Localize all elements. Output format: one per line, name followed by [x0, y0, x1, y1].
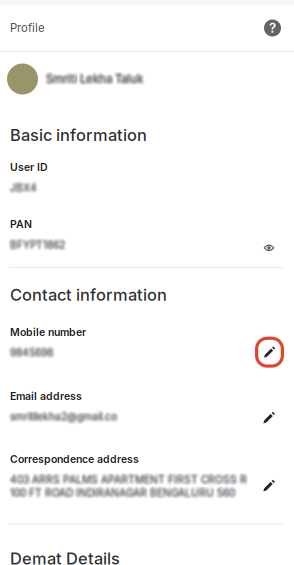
- staticText: Mobile number: [10, 326, 86, 338]
- staticText: Smriti Lekha Taluk: [45, 72, 142, 86]
- staticText: 100 FT ROAD INDIRANAGAR BENGALURU 560: [10, 487, 235, 499]
- staticText: 403 ARRS PALMS APARTMENT FIRST CROSS R: [9, 472, 246, 485]
- staticText: 100 FT ROAD INDIRANAGAR BENGALURU 560: [12, 489, 237, 501]
- staticText: 403 ARRS PALMS APARTMENT FIRST CROSS R: [9, 475, 246, 488]
- staticText: 403 ARRS PALMS APARTMENT FIRST CROSS R: [8, 473, 245, 486]
- staticText: JBX4: [11, 184, 38, 196]
- staticText: JBX4: [9, 180, 36, 192]
- staticText: BFYPT1862: [8, 237, 63, 249]
- staticText: BFYPT1862: [11, 241, 66, 253]
- staticText: 100 FT ROAD INDIRANAGAR BENGALURU 560: [12, 488, 237, 500]
- staticText: 100 FT ROAD INDIRANAGAR BENGALURU 560: [11, 487, 236, 499]
- staticText: 403 ARRS PALMS APARTMENT FIRST CROSS R: [10, 473, 247, 486]
- staticText: Contact information: [10, 285, 167, 305]
- staticText: 403 ARRS PALMS APARTMENT FIRST CROSS R: [12, 472, 249, 485]
- staticText: smritilekha2@gmail.co: [12, 411, 119, 424]
- staticText: smritilekha2@gmail.co: [12, 412, 119, 425]
- staticText: JBX4: [12, 182, 39, 194]
- staticText: 403 ARRS PALMS APARTMENT FIRST CROSS R: [8, 474, 245, 487]
- staticText: 403 ARRS PALMS APARTMENT FIRST CROSS R: [10, 474, 247, 487]
- staticText: BFYPT1862: [10, 238, 65, 250]
- staticText: JBX4: [12, 184, 39, 196]
- staticText: Smriti Lekha Taluk: [45, 74, 142, 88]
- staticText: Profile: [10, 21, 45, 35]
- staticText: 9845698: [8, 346, 51, 359]
- staticText: User ID: [10, 161, 48, 173]
- button[interactable]: Help: [264, 19, 281, 36]
- staticText: smritilekha2@gmail.co: [11, 410, 118, 423]
- staticText: smritilekha2@gmail.co: [12, 408, 119, 421]
- staticText: smritilekha2@gmail.co: [8, 408, 115, 421]
- staticText: JBX4: [10, 181, 37, 193]
- staticText: smritilekha2@gmail.co: [12, 410, 119, 423]
- staticText: Smriti Lekha Taluk: [47, 74, 144, 88]
- staticText: BFYPT1862: [11, 240, 66, 252]
- staticText: 403 ARRS PALMS APARTMENT FIRST CROSS R: [12, 473, 249, 486]
- staticText: Smriti Lekha Taluk: [48, 70, 145, 84]
- button[interactable]: Show PAN: [257, 240, 284, 256]
- staticText: 9845698: [9, 345, 52, 358]
- staticText: BFYPT1862: [9, 237, 64, 249]
- staticText: 9845698: [9, 347, 52, 360]
- staticText: Smriti Lekha Taluk: [46, 71, 143, 85]
- staticText: smritilekha2@gmail.co: [9, 411, 116, 424]
- staticText: 100 FT ROAD INDIRANAGAR BENGALURU 560: [12, 487, 237, 499]
- staticText: 9845698: [8, 345, 51, 358]
- staticText: Smriti Lekha Taluk: [45, 70, 142, 84]
- staticText: 403 ARRS PALMS APARTMENT FIRST CROSS R: [11, 474, 248, 487]
- staticText: smritilekha2@gmail.co: [8, 409, 115, 422]
- staticText: JBX4: [10, 183, 37, 195]
- staticText: 100 FT ROAD INDIRANAGAR BENGALURU 560: [8, 486, 233, 498]
- staticText: smritilekha2@gmail.co: [11, 411, 118, 424]
- staticText: JBX4: [9, 182, 36, 194]
- staticText: 9845698: [8, 347, 51, 360]
- staticText: PAN: [10, 218, 32, 230]
- staticText: 100 FT ROAD INDIRANAGAR BENGALURU 560: [9, 489, 234, 501]
- staticText: 9845698: [12, 345, 55, 358]
- staticText: Smriti Lekha Taluk: [46, 70, 143, 84]
- staticText: JBX4: [8, 183, 35, 195]
- staticText: BFYPT1862: [9, 239, 64, 251]
- staticText: BFYPT1862: [12, 240, 67, 252]
- staticText: JBX4: [8, 180, 35, 192]
- button[interactable]: Edit Correspondence address: [257, 478, 284, 494]
- staticText: 403 ARRS PALMS APARTMENT FIRST CROSS R: [9, 473, 246, 486]
- staticText: 9845698: [8, 348, 51, 361]
- staticText: 9845698: [10, 348, 53, 361]
- staticText: 403 ARRS PALMS APARTMENT FIRST CROSS R: [8, 471, 245, 484]
- staticText: JBX4: [12, 181, 39, 193]
- staticText: 100 FT ROAD INDIRANAGAR BENGALURU 560: [10, 485, 235, 497]
- staticText: BFYPT1862: [9, 241, 64, 253]
- staticText: smritilekha2@gmail.co: [10, 411, 117, 424]
- staticText: 100 FT ROAD INDIRANAGAR BENGALURU 560: [12, 486, 237, 498]
- staticText: 100 FT ROAD INDIRANAGAR BENGALURU 560: [10, 489, 235, 501]
- staticText: smritilekha2@gmail.co: [9, 412, 116, 425]
- staticText: 9845698: [11, 346, 54, 359]
- staticText: JBX4: [11, 183, 38, 195]
- staticText: JBX4: [11, 181, 38, 193]
- staticText: smritilekha2@gmail.co: [9, 410, 116, 423]
- staticText: 9845698: [10, 347, 53, 360]
- staticText: JBX4: [8, 182, 35, 194]
- staticText: Smriti Lekha Taluk: [47, 70, 144, 84]
- staticText: BFYPT1862: [8, 240, 63, 252]
- staticText: Smriti Lekha Taluk: [46, 73, 143, 87]
- button[interactable]: Edit Mobile number: [255, 337, 284, 368]
- staticText: Smriti Lekha Taluk: [45, 73, 142, 87]
- staticText: smritilekha2@gmail.co: [10, 410, 117, 423]
- button[interactable]: Edit Email address: [257, 410, 284, 426]
- staticText: smritilekha2@gmail.co: [11, 412, 118, 425]
- staticText: JBX4: [9, 184, 36, 196]
- staticText: Smriti Lekha Taluk: [44, 74, 141, 88]
- staticText: JBX4: [8, 181, 35, 193]
- staticText: 100 FT ROAD INDIRANAGAR BENGALURU 560: [8, 489, 233, 501]
- staticText: 403 ARRS PALMS APARTMENT FIRST CROSS R: [12, 471, 249, 484]
- staticText: 100 FT ROAD INDIRANAGAR BENGALURU 560: [11, 485, 236, 497]
- staticText: BFYPT1862: [10, 237, 65, 249]
- staticText: BFYPT1862: [8, 238, 63, 250]
- staticText: BFYPT1862: [8, 241, 63, 253]
- staticText: JBX4: [12, 183, 39, 195]
- staticText: smritilekha2@gmail.co: [9, 409, 116, 422]
- staticText: 100 FT ROAD INDIRANAGAR BENGALURU 560: [8, 487, 233, 499]
- staticText: Smriti Lekha Taluk: [47, 73, 144, 87]
